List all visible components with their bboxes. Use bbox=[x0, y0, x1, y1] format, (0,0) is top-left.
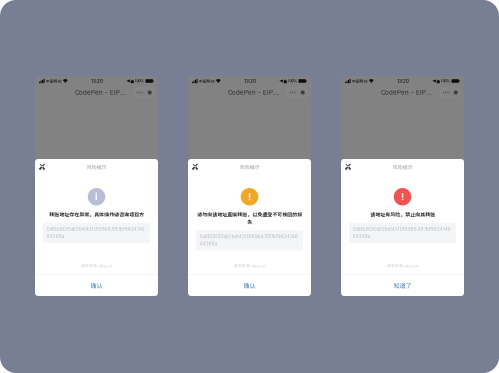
button[interactable]: 更多 bbox=[287, 88, 307, 97]
staticText: 请求来源 xdsys.io bbox=[81, 263, 112, 268]
staticText: 0x8E5BCF0a92be143fDf69b67DF7bF9834146642… bbox=[200, 234, 298, 246]
button[interactable]: 关闭 bbox=[342, 161, 353, 172]
staticText: 100% bbox=[135, 79, 145, 83]
button[interactable]: 关闭 bbox=[189, 161, 200, 172]
button[interactable]: 关闭 bbox=[36, 161, 47, 172]
staticText: 13:20 bbox=[397, 78, 409, 84]
staticText: 中国移动 bbox=[46, 78, 62, 84]
staticText: i bbox=[95, 191, 98, 202]
staticText: 100% bbox=[441, 79, 451, 83]
staticText: 请勿向该地址直接转账，以免遭受不可挽回的损失 bbox=[197, 210, 302, 225]
staticText: CodePen - EIP... bbox=[75, 89, 126, 96]
staticText: ! bbox=[248, 191, 251, 202]
staticText: 中国移动 bbox=[352, 78, 368, 84]
staticText: 风险提示 bbox=[86, 163, 106, 171]
staticText: 13:20 bbox=[91, 78, 103, 84]
staticText: 风险提示 bbox=[392, 163, 412, 171]
button[interactable]: 确认 bbox=[188, 275, 311, 296]
staticText: 该地址有风险，禁止向其转账 bbox=[370, 210, 435, 218]
button[interactable]: 确认 bbox=[35, 275, 158, 296]
staticText: 请求来源 xdsys.io bbox=[387, 263, 418, 268]
staticText: 中国移动 bbox=[199, 78, 215, 84]
staticText: 0x8E5BCF0a92be143fDf69b67DF7bF9834146642… bbox=[353, 227, 451, 239]
staticText: CodePen - EIP... bbox=[228, 89, 279, 96]
button[interactable]: 知道了 bbox=[341, 275, 464, 296]
staticText: 请求来源 xdsys.io bbox=[234, 263, 265, 268]
staticText: 知道了 bbox=[393, 281, 411, 290]
staticText: 100% bbox=[288, 79, 298, 83]
staticText: 转账地址存在异常，具体操作请咨询项目方 bbox=[49, 210, 144, 218]
staticText: 风险提示 bbox=[239, 163, 259, 171]
staticText: 13:20 bbox=[244, 78, 256, 84]
button[interactable]: 更多 bbox=[440, 88, 460, 97]
staticText: CodePen - EIP... bbox=[381, 89, 432, 96]
staticText: 0x8E5BCF0a92be143fDf69b67DF7bF9834146642… bbox=[47, 227, 145, 239]
staticText: ! bbox=[401, 191, 404, 202]
button[interactable]: 更多 bbox=[134, 88, 154, 97]
staticText: 确认 bbox=[243, 281, 255, 290]
staticText: 确认 bbox=[90, 281, 102, 290]
